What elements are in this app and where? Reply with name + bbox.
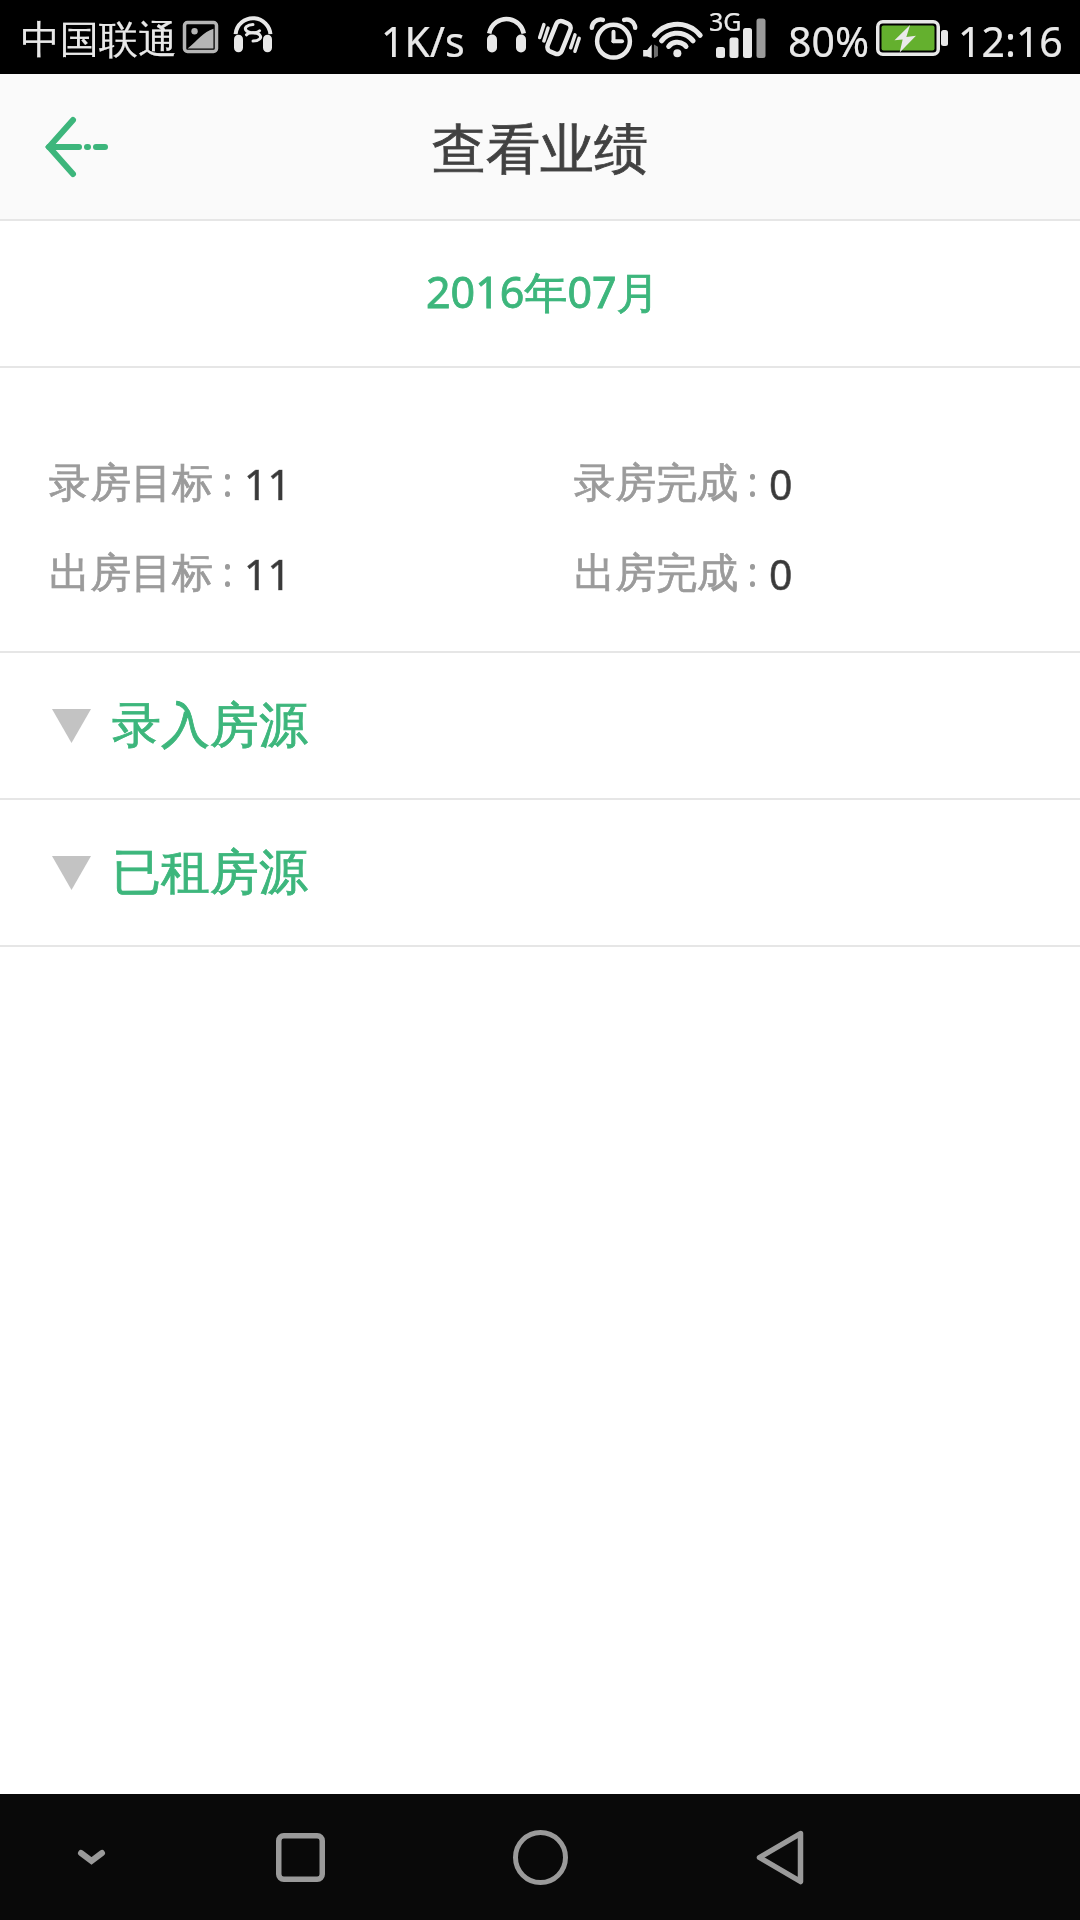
staticText: 查看业绩 xyxy=(432,116,648,184)
staticText: 录房目标 xyxy=(49,458,213,510)
button[interactable]: 已租房源 xyxy=(0,800,1080,945)
button[interactable]: Back xyxy=(0,74,145,219)
staticText: 0 xyxy=(769,546,793,602)
staticText: 查看业绩 xyxy=(432,116,648,184)
staticText: 0 xyxy=(769,546,793,602)
button[interactable]: Back xyxy=(715,1794,845,1920)
staticText: 0 xyxy=(769,456,793,512)
staticText: 已租房源 xyxy=(112,842,308,904)
staticText: 录房目标 xyxy=(49,458,213,510)
staticText: : xyxy=(747,543,758,599)
staticText: 2016年07月 xyxy=(426,262,660,321)
staticText: 2016年07月 xyxy=(426,262,660,321)
staticText: 11 xyxy=(244,546,291,602)
staticText: 出房完成 xyxy=(574,548,738,600)
staticText: : xyxy=(222,543,233,599)
staticText: : xyxy=(222,453,233,509)
staticText: 中国联通 xyxy=(21,15,177,64)
staticText: 录入房源 xyxy=(112,695,308,757)
staticText: 11 xyxy=(244,546,291,602)
staticText: 录入房源 xyxy=(112,695,308,757)
button[interactable]: Hide keyboard xyxy=(26,1794,156,1920)
staticText: 11 xyxy=(244,456,291,512)
staticText: 0 xyxy=(769,456,793,512)
staticText: 录房完成 xyxy=(574,458,738,510)
staticText: 已租房源 xyxy=(112,842,308,904)
staticText: 1K/s xyxy=(381,13,465,69)
staticText: 12:16 xyxy=(958,13,1063,69)
staticText: 80% xyxy=(788,13,869,69)
button[interactable]: Home xyxy=(475,1794,605,1920)
button[interactable]: 录入房源 xyxy=(0,653,1080,798)
staticText: : xyxy=(747,453,758,509)
staticText: 录房完成 xyxy=(574,458,738,510)
staticText: 11 xyxy=(244,456,291,512)
staticText: 3G xyxy=(709,4,742,38)
button[interactable]: Recent apps xyxy=(235,1794,365,1920)
staticText: 出房目标 xyxy=(49,548,213,600)
staticText: 出房目标 xyxy=(49,548,213,600)
staticText: 出房完成 xyxy=(574,548,738,600)
